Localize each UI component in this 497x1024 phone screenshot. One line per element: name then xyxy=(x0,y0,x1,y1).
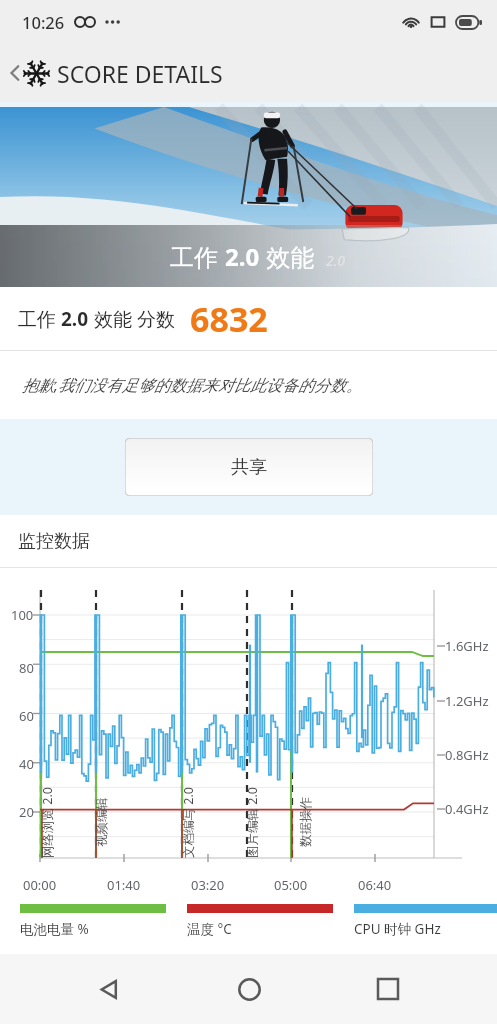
staticText: 6832 xyxy=(190,296,268,342)
staticText: 效能 分数 xyxy=(89,306,175,332)
staticText: 抱歉,我们没有足够的数据来对比此设备的分数。 xyxy=(22,374,363,396)
other: Back xyxy=(7,60,22,86)
staticText: 温度 °C xyxy=(187,920,232,938)
staticText: 监控数据 xyxy=(18,530,90,553)
staticText: 01:40 xyxy=(107,876,141,894)
button[interactable]: 工作 xyxy=(0,107,497,287)
staticText: 40 xyxy=(19,755,34,773)
staticText: 共享 xyxy=(231,456,267,479)
staticText: 2.0 xyxy=(61,306,89,332)
staticText: 1.6GHz xyxy=(445,637,489,655)
staticText: 20 xyxy=(19,803,34,821)
staticText: 图片编辑 2.0 xyxy=(244,787,261,858)
staticText: SCORE DETAILS xyxy=(57,58,223,89)
button[interactable]: Back xyxy=(0,44,497,102)
staticText: 视频编辑 xyxy=(94,797,110,847)
staticText: 100 xyxy=(11,606,34,624)
staticText: 10:26 xyxy=(22,11,65,33)
button[interactable]: Recent apps xyxy=(357,958,419,1020)
staticText: 06:40 xyxy=(358,876,392,894)
staticText: 00:00 xyxy=(23,876,57,894)
staticText: 工作 xyxy=(170,240,225,273)
staticText: 60 xyxy=(19,707,34,725)
staticText: 效能 xyxy=(260,240,315,273)
staticText: 文档编写 2.0 xyxy=(180,787,197,858)
staticText: 2.0 xyxy=(326,251,346,270)
button[interactable]: 共享 xyxy=(125,438,373,496)
staticText: 80 xyxy=(19,659,34,677)
staticText: 2.0 xyxy=(225,240,260,273)
staticText: 电池电量 % xyxy=(20,920,89,938)
staticText: 0.4GHz xyxy=(445,800,489,818)
staticText: 1.2GHz xyxy=(445,692,489,710)
button[interactable]: Home xyxy=(218,958,280,1020)
button[interactable]: Back xyxy=(78,958,140,1020)
staticText: 05:00 xyxy=(274,876,308,894)
staticText: 03:20 xyxy=(191,876,225,894)
staticText: 数据操作 xyxy=(298,797,314,847)
staticText: CPU 时钟 GHz xyxy=(354,920,441,938)
staticText: 0.8GHz xyxy=(445,746,489,764)
staticText: 网络浏览 2.0 xyxy=(39,787,56,858)
staticText: 工作 xyxy=(18,306,61,332)
